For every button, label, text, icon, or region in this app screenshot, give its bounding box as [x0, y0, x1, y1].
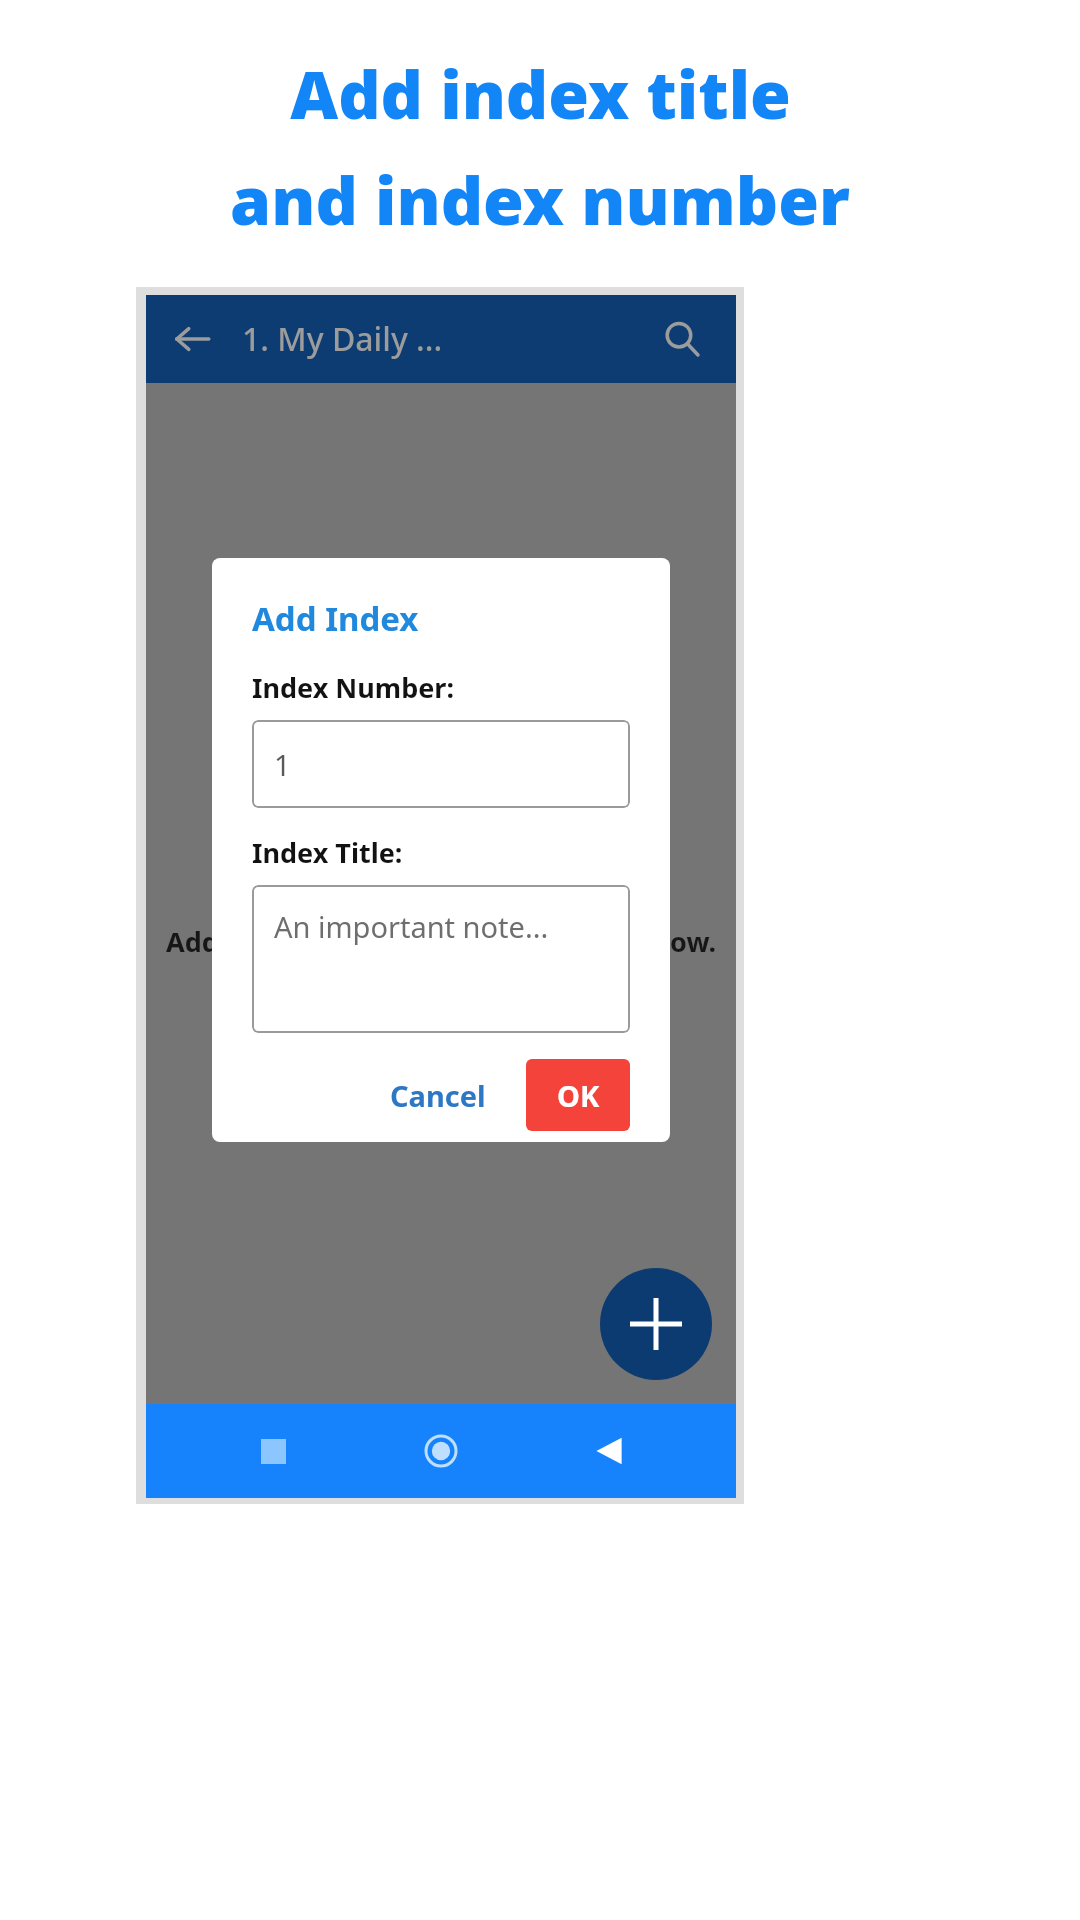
staticText: Add Index [252, 596, 419, 641]
button[interactable]: OK [526, 1059, 630, 1131]
staticText: Index Number: [252, 669, 454, 706]
staticText: and index number [230, 154, 850, 244]
button[interactable]: Back [164, 311, 220, 367]
staticText: An important note... [274, 907, 549, 946]
staticText: 1. My Daily ... [242, 317, 443, 361]
button[interactable]: Recents [232, 1410, 314, 1492]
staticText: OK [557, 1076, 600, 1115]
staticText: 1 [274, 745, 291, 784]
staticText: Add index title [290, 48, 791, 138]
staticText: Add [166, 923, 219, 960]
button[interactable]: Add index [600, 1268, 712, 1380]
button[interactable]: Search [654, 311, 710, 367]
button[interactable]: Back [568, 1410, 650, 1492]
staticText: Cancel [390, 1076, 486, 1115]
staticText: low. [662, 923, 716, 960]
button[interactable]: Home [400, 1410, 482, 1492]
button[interactable]: 1 [252, 720, 630, 808]
staticText: Index Title: [252, 834, 403, 871]
button[interactable]: An important note... [252, 885, 630, 1033]
button[interactable]: Cancel [378, 1066, 498, 1125]
